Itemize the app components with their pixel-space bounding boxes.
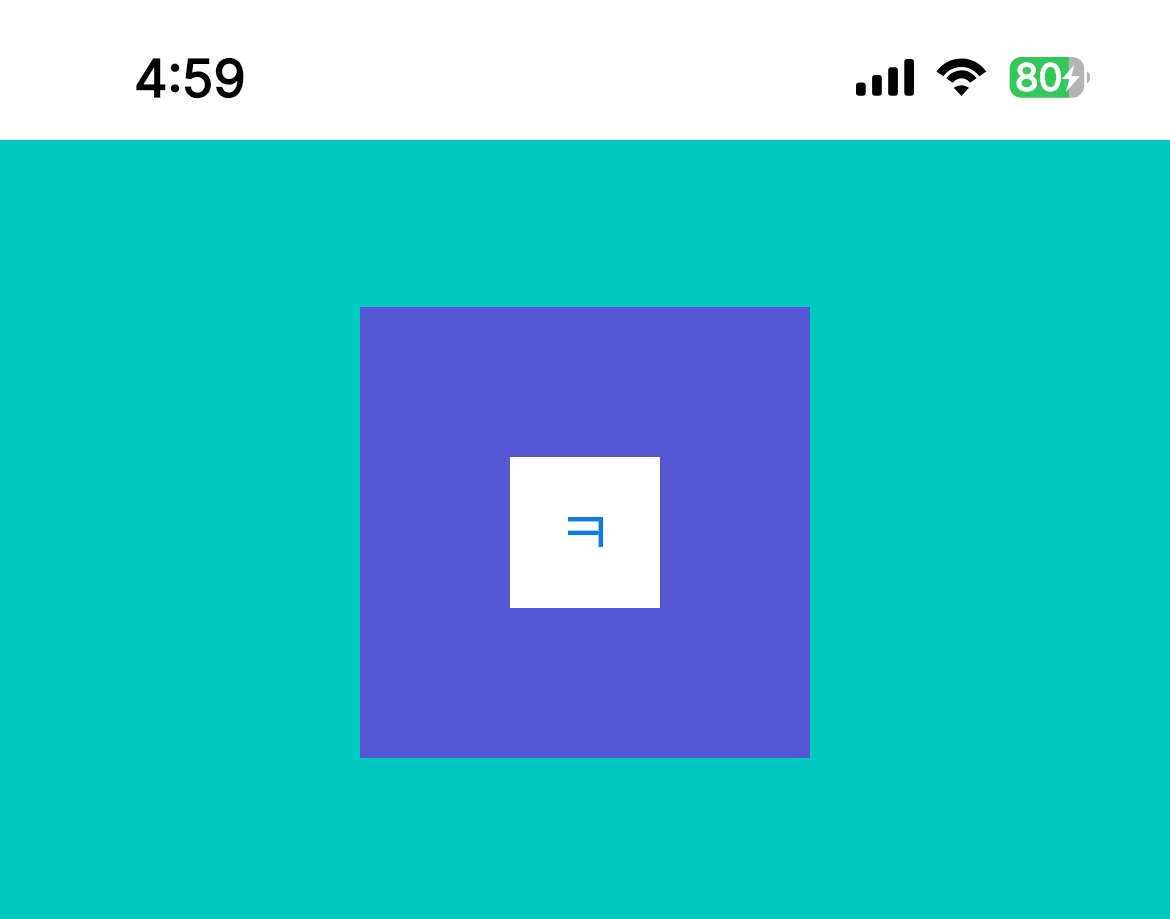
other: Signal, Wi-Fi and battery status <box>850 40 1110 110</box>
staticText: 4:59 <box>134 47 246 110</box>
button[interactable]: Artwork <box>360 307 810 758</box>
staticText: 80 <box>1015 54 1063 100</box>
